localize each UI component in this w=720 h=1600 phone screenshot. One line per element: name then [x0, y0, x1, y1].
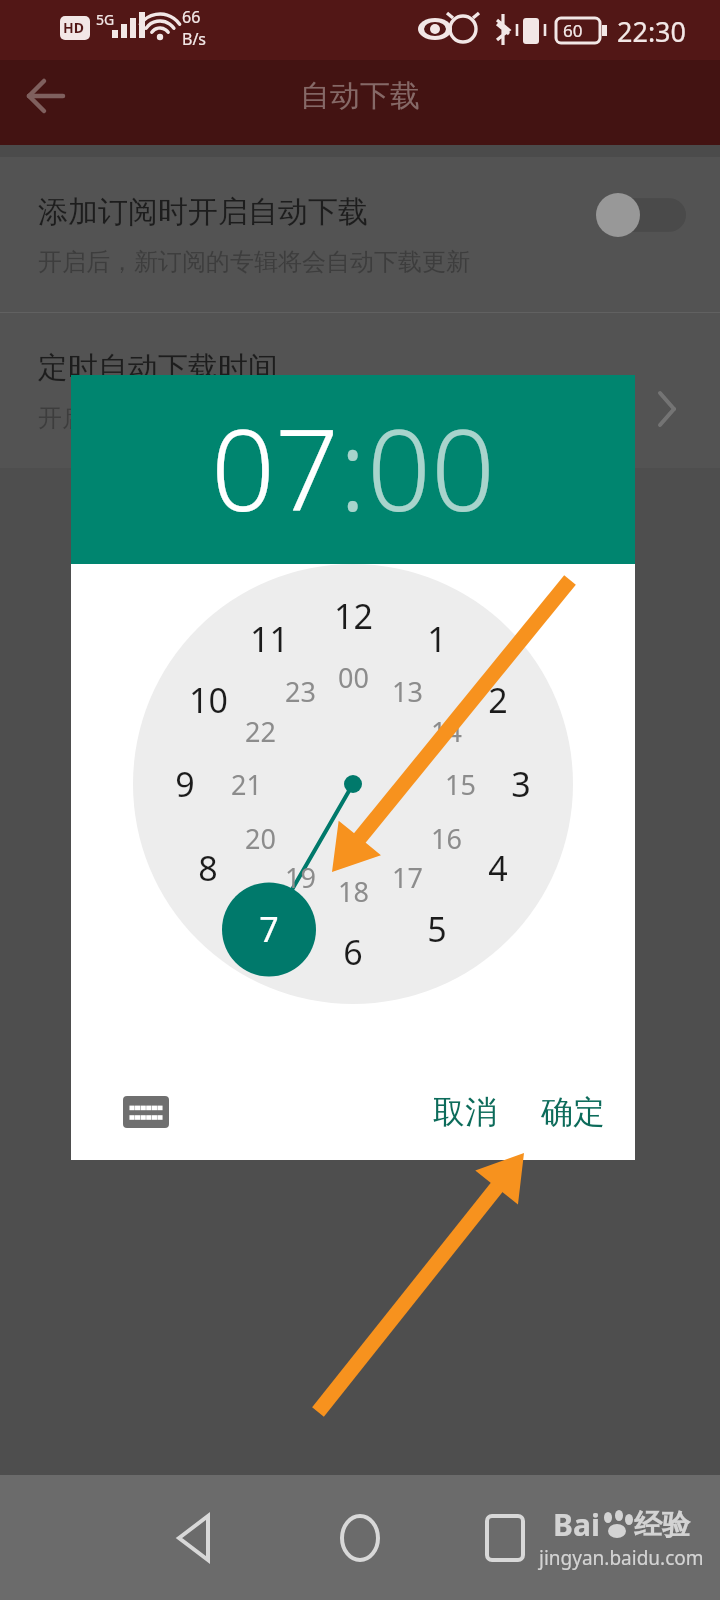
staticText: HD	[63, 18, 84, 37]
staticText: 00	[338, 659, 369, 696]
button[interactable]: 返回	[18, 68, 74, 124]
button[interactable]: 主页	[325, 1503, 395, 1573]
staticText: 19	[285, 859, 316, 896]
staticText: Bai	[553, 1504, 600, 1545]
button[interactable]: 07	[211, 391, 339, 544]
button[interactable]: 开关	[596, 193, 686, 237]
staticText: B/s	[182, 28, 207, 50]
staticText: 8	[198, 845, 218, 891]
button[interactable]: 时钟选择器	[71, 564, 635, 1069]
staticText: 确定	[541, 1092, 605, 1132]
staticText: 60	[563, 19, 583, 42]
staticText: 开启后	[38, 403, 110, 433]
staticText: 开启后，新订阅的专辑将会自动下载更新	[38, 247, 470, 277]
staticText: 12	[334, 593, 373, 639]
staticText: 6	[343, 929, 363, 975]
staticText: 添加订阅时开启自动下载	[38, 193, 368, 231]
staticText: 23	[285, 673, 316, 710]
staticText: 定时自动下载时间	[38, 349, 278, 387]
staticText: 14	[431, 713, 462, 750]
button[interactable]: 最近任务	[470, 1503, 540, 1573]
button[interactable]: 00	[367, 391, 495, 544]
staticText: 15	[445, 766, 476, 803]
staticText: :	[339, 391, 367, 544]
staticText: 3	[511, 761, 531, 807]
staticText: 22	[245, 713, 276, 750]
staticText: jingyan.baidu.com	[539, 1545, 704, 1571]
button[interactable]: 定时自动下载时间	[0, 313, 720, 468]
staticText: 13	[392, 673, 423, 710]
staticText: 22:30	[617, 13, 687, 50]
staticText: 7	[259, 906, 279, 952]
staticText: 1	[427, 616, 447, 662]
button[interactable]: 添加订阅时开启自动下载	[0, 157, 720, 312]
button[interactable]: 确定	[519, 1078, 635, 1146]
staticText: 18	[338, 873, 369, 910]
staticText: 66	[182, 6, 201, 28]
staticText: 5G	[96, 10, 115, 29]
staticText: 9	[175, 761, 195, 807]
button[interactable]: 键盘输入	[117, 1083, 175, 1141]
staticText: 17	[392, 859, 423, 896]
staticText: 16	[431, 820, 462, 857]
staticText: 4	[488, 845, 508, 891]
staticText: 20	[245, 820, 276, 857]
button[interactable]: 取消	[411, 1078, 519, 1146]
button[interactable]: 返回	[160, 1503, 230, 1573]
staticText: 2	[488, 677, 508, 723]
staticText: 21	[231, 766, 262, 803]
staticText: 10	[189, 677, 228, 723]
staticText: 自动下载	[300, 77, 420, 115]
staticText: 11	[250, 616, 289, 662]
staticText: 5	[427, 906, 447, 952]
staticText: 取消	[433, 1092, 497, 1132]
staticText: 经验	[634, 1507, 690, 1542]
